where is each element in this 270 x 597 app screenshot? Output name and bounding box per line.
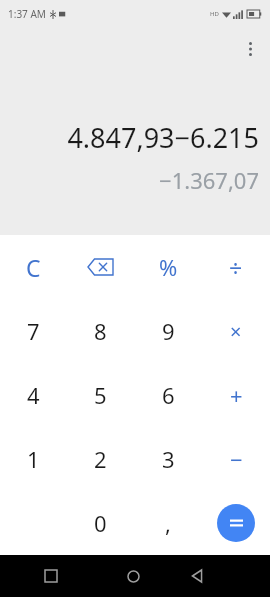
- button[interactable]: C: [0, 235, 67, 299]
- button[interactable]: 1: [0, 427, 67, 491]
- button[interactable]: 8: [67, 299, 134, 363]
- button[interactable]: +: [202, 363, 270, 427]
- staticText: 1:37 AM: [8, 7, 46, 21]
- button[interactable]: Back: [165, 555, 229, 597]
- staticText: −1.367,07: [159, 165, 259, 195]
- staticText: 7: [27, 316, 40, 346]
- staticText: −: [230, 444, 243, 474]
- button[interactable]: 2: [67, 427, 134, 491]
- staticText: 3: [162, 444, 175, 474]
- staticText: 1: [27, 444, 40, 474]
- button[interactable]: 4: [0, 363, 67, 427]
- button[interactable]: Equals: [202, 491, 270, 555]
- staticText: ÷: [229, 252, 243, 283]
- button[interactable]: Home: [101, 555, 165, 597]
- staticText: 8: [94, 316, 107, 346]
- staticText: %: [159, 252, 178, 282]
- button[interactable]: −: [202, 427, 270, 491]
- button[interactable]: ×: [202, 299, 270, 363]
- staticText: 2: [94, 444, 107, 474]
- staticText: ,: [165, 508, 171, 538]
- button[interactable]: ,: [134, 491, 202, 555]
- button[interactable]: 9: [134, 299, 202, 363]
- staticText: HD: [210, 10, 219, 18]
- button[interactable]: Backspace: [67, 235, 134, 299]
- button[interactable]: 3: [134, 427, 202, 491]
- button[interactable]: 0: [67, 491, 134, 555]
- button[interactable]: ÷: [202, 235, 270, 299]
- button[interactable]: %: [134, 235, 202, 299]
- button[interactable]: 5: [67, 363, 134, 427]
- staticText: 5: [94, 380, 107, 410]
- button[interactable]: 6: [134, 363, 202, 427]
- staticText: ×: [230, 318, 242, 345]
- staticText: 4.847,93−6.215: [67, 119, 259, 156]
- button[interactable]: More options: [235, 34, 265, 64]
- staticText: 6: [162, 380, 175, 410]
- button[interactable]: 7: [0, 299, 67, 363]
- staticText: 0: [94, 508, 107, 538]
- button[interactable]: Recents: [0, 555, 101, 597]
- staticText: C: [26, 252, 41, 283]
- staticText: 9: [162, 316, 175, 346]
- staticText: +: [230, 380, 243, 410]
- staticText: 4: [27, 380, 40, 410]
